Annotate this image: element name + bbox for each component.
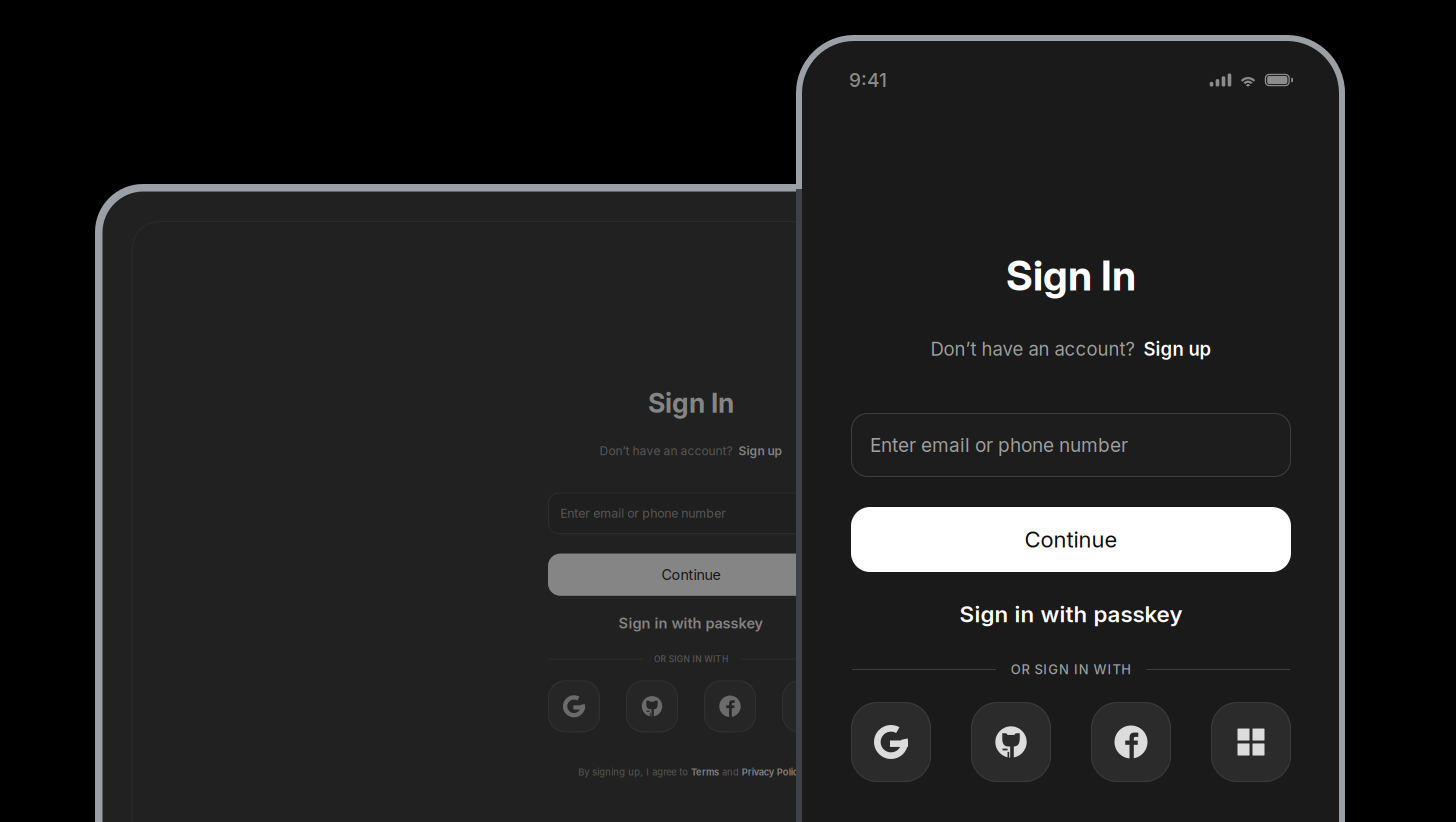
button[interactable]: Continue [851, 507, 1291, 572]
staticText: Sign in with passkey [618, 614, 763, 632]
staticText: S [669, 654, 674, 664]
staticText: I [713, 654, 715, 664]
staticText: R [660, 654, 665, 664]
staticText: Don’t have an account? [600, 444, 733, 458]
staticText: By signing up, I agree to [578, 766, 688, 778]
staticText: Enter email or phone number [870, 433, 1128, 456]
staticText: G [677, 654, 683, 664]
button[interactable]: Continue [548, 553, 834, 596]
staticText: O [654, 654, 660, 664]
staticText: N [683, 654, 689, 664]
staticText: I [693, 654, 695, 664]
button[interactable]: Sign up [1143, 338, 1211, 360]
staticText: Terms [691, 766, 719, 778]
staticText: R [1022, 662, 1030, 677]
staticText: O [1011, 662, 1021, 677]
staticText: Continue [661, 566, 720, 583]
staticText: W [1094, 662, 1107, 677]
staticText: Sign up [1143, 338, 1211, 360]
staticText: I [1107, 662, 1111, 677]
staticText: H [1121, 662, 1131, 677]
button[interactable]: Sign in with GitHub [626, 680, 678, 732]
staticText: H [722, 654, 728, 664]
staticText: Enter email or phone number [560, 506, 726, 521]
button[interactable]: Sign in with passkey [548, 612, 834, 634]
button[interactable]: Sign in with GitHub [971, 702, 1051, 782]
staticText: Sign in with passkey [959, 600, 1182, 628]
staticText: N [695, 654, 701, 664]
button[interactable]: Sign in with Facebook [704, 680, 756, 732]
staticText: S [1034, 662, 1042, 677]
staticText: G [1048, 662, 1058, 677]
staticText: Continue [1024, 526, 1117, 553]
staticText: T [715, 654, 721, 664]
staticText: N [1079, 662, 1089, 677]
button[interactable]: Sign in with Google [548, 680, 600, 732]
staticText: Don’t have an account? [930, 338, 1134, 360]
button[interactable]: Privacy Policy [742, 766, 804, 778]
staticText: Sign In [1006, 251, 1136, 300]
button[interactable]: Terms [691, 766, 719, 778]
staticText: 9:41 [849, 68, 887, 91]
staticText: W [704, 654, 712, 664]
staticText: Sign up [738, 444, 782, 458]
button[interactable]: Sign up [738, 444, 782, 458]
staticText: T [1112, 662, 1120, 677]
staticText: I [1043, 662, 1047, 677]
button[interactable]: Sign in with Google [851, 702, 931, 782]
button[interactable]: Sign in with Microsoft [782, 680, 834, 732]
staticText: Privacy Policy [742, 766, 804, 778]
staticText: Sign In [648, 387, 734, 419]
button[interactable]: Sign in with passkey [851, 597, 1291, 631]
staticText: I [1074, 662, 1078, 677]
staticText: and [722, 766, 739, 778]
staticText: N [1059, 662, 1069, 677]
staticText: I [674, 654, 676, 664]
button[interactable]: Sign in with Facebook [1091, 702, 1171, 782]
button[interactable]: Sign in with Microsoft [1211, 702, 1291, 782]
